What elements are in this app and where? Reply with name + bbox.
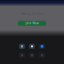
button[interactable]: Participants — [19, 53, 25, 58]
button[interactable]: Microphone — [19, 44, 25, 49]
button[interactable]: Chat — [29, 53, 35, 58]
button[interactable]: Camera — [29, 44, 35, 49]
staticText: Join Now — [25, 21, 38, 25]
button[interactable]: Join Now — [18, 21, 46, 26]
button[interactable]: Share — [39, 44, 45, 49]
button[interactable]: More — [39, 53, 45, 58]
